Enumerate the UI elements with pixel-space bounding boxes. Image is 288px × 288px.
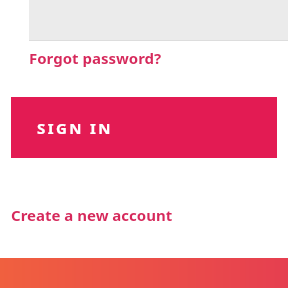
staticText: SIGN IN (37, 118, 113, 138)
staticText: Forgot password? (29, 48, 162, 68)
staticText: Create a new account (11, 205, 173, 225)
button[interactable]: Create a new account (11, 203, 173, 226)
button[interactable]: Forgot password? (29, 46, 162, 69)
button[interactable]: SIGN IN (11, 97, 277, 158)
